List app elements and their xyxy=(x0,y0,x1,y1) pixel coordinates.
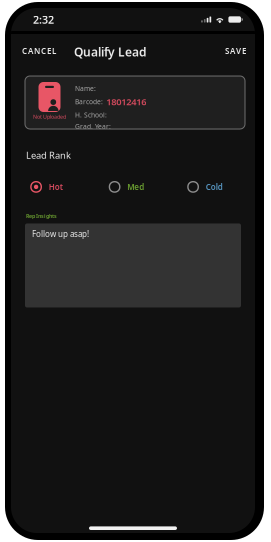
staticText: 18012416 xyxy=(106,95,146,108)
staticText: Med xyxy=(127,182,144,192)
staticText: Not Uploaded xyxy=(33,113,66,120)
staticText: Barcode: xyxy=(75,97,103,106)
staticText: Hot xyxy=(49,182,63,192)
staticText: S A V E xyxy=(225,46,246,56)
staticText: H. School: xyxy=(75,110,107,119)
staticText: C A N C E L xyxy=(22,46,56,56)
button[interactable]: S A V E xyxy=(214,39,246,63)
staticText: Qualify Lead xyxy=(74,44,147,60)
button[interactable]: Cold xyxy=(187,180,266,193)
staticText: Follow up asap! xyxy=(32,228,89,239)
staticText: Grad. Year: xyxy=(75,122,111,131)
staticText: Rep Insights xyxy=(26,212,57,219)
button[interactable]: C A N C E L xyxy=(22,39,68,63)
button[interactable]: Hot xyxy=(30,180,109,193)
button[interactable]: Med xyxy=(109,180,187,193)
staticText: Name: xyxy=(75,84,96,93)
staticText: 2:32 xyxy=(33,12,54,27)
staticText: Cold xyxy=(206,182,223,192)
staticText: Lead Rank xyxy=(26,149,71,161)
